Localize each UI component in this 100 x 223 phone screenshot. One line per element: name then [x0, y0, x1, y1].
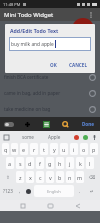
button[interactable]: Done	[80, 121, 96, 127]
staticText: d	[28, 160, 32, 167]
staticText: finish BCA certificate	[4, 74, 49, 80]
staticText: t	[43, 146, 45, 153]
button[interactable]: s	[16, 157, 24, 169]
button[interactable]: Period	[76, 185, 83, 197]
button[interactable]: Toggle	[4, 122, 14, 127]
staticText: n	[68, 174, 72, 181]
button[interactable]: q	[2, 143, 9, 155]
button[interactable]: z	[16, 171, 24, 183]
staticText: q	[4, 146, 8, 153]
button[interactable]: Enter	[85, 185, 98, 197]
button[interactable]: Home	[46, 201, 55, 210]
staticText: CANCEL	[69, 62, 87, 68]
staticText: ?123	[3, 188, 13, 194]
button[interactable]: Search	[61, 120, 70, 129]
staticText: o	[82, 146, 86, 153]
staticText: x	[29, 174, 32, 181]
button[interactable]: k	[76, 157, 84, 169]
staticText: came in bag, add in paper	[4, 90, 61, 96]
staticText: .	[79, 188, 81, 194]
button[interactable]: Symbols	[2, 185, 14, 197]
button[interactable]: Backspace	[86, 171, 98, 183]
staticText: l	[89, 160, 91, 167]
button[interactable]: m	[76, 171, 84, 183]
button[interactable]: Add todo	[72, 18, 94, 40]
staticText: v	[49, 174, 52, 181]
button[interactable]: w	[11, 143, 18, 155]
button[interactable]: a	[6, 157, 14, 169]
staticText: b	[58, 174, 62, 181]
staticText: e	[22, 146, 26, 153]
button[interactable]: Space	[34, 185, 74, 197]
staticText: s	[19, 160, 22, 167]
staticText: ↵	[90, 189, 94, 194]
button[interactable]: f	[36, 157, 44, 169]
button[interactable]: g	[46, 157, 54, 169]
button[interactable]: finish BCA certificate	[0, 69, 100, 85]
button[interactable]: Back	[73, 201, 82, 210]
button[interactable]: Translate	[82, 134, 88, 140]
staticText: Mini Todo Widget	[4, 11, 54, 19]
staticText: w	[12, 146, 17, 153]
staticText: Apple	[48, 134, 61, 140]
button[interactable]: take medicine on bag	[0, 101, 100, 117]
button[interactable]: b	[56, 171, 64, 183]
staticText: ⌫	[89, 175, 96, 180]
button[interactable]: Voice input	[91, 134, 97, 140]
button[interactable]: came in bag, add in paper	[0, 85, 100, 101]
button[interactable]: t	[40, 143, 48, 155]
staticText: g	[48, 160, 52, 167]
button[interactable]: Clipboard	[3, 134, 9, 140]
button[interactable]: o	[80, 143, 88, 155]
button[interactable]: d	[26, 157, 34, 169]
staticText: Add/Edit Todo Text	[10, 27, 59, 34]
button[interactable]: List	[42, 120, 51, 129]
staticText: buy milk and apple	[11, 41, 54, 48]
button[interactable]: Apple	[46, 134, 63, 140]
button[interactable]: some	[20, 134, 36, 140]
button[interactable]: Emoji	[73, 134, 79, 140]
staticText: p	[92, 146, 96, 153]
staticText: a	[8, 160, 12, 167]
button[interactable]: v	[46, 171, 54, 183]
button[interactable]: CANCEL	[65, 60, 91, 70]
button[interactable]: c	[36, 171, 44, 183]
staticText: OK	[50, 62, 57, 68]
button[interactable]: OK	[45, 60, 62, 70]
staticText: j	[69, 160, 71, 167]
button[interactable]: u	[60, 143, 68, 155]
staticText: ⇧	[6, 175, 10, 180]
button[interactable]: j	[66, 157, 74, 169]
staticText: h	[58, 160, 62, 167]
button[interactable]: e	[20, 143, 28, 155]
button[interactable]: l	[86, 157, 94, 169]
button[interactable]: i	[70, 143, 78, 155]
staticText: r	[33, 146, 36, 153]
button[interactable]: h	[56, 157, 64, 169]
button[interactable]: Add	[23, 120, 32, 129]
staticText: f	[39, 160, 41, 167]
staticText: c	[39, 174, 42, 181]
button[interactable]: Comma	[16, 185, 23, 197]
button[interactable]: p	[90, 143, 98, 155]
staticText: English	[47, 189, 61, 194]
staticText: some	[22, 134, 34, 140]
staticText: take medicine on bag	[4, 106, 51, 112]
button[interactable]: Recents	[18, 201, 27, 210]
button[interactable]: Language	[24, 185, 33, 197]
staticText: ,	[19, 188, 21, 194]
button[interactable]: n	[66, 171, 74, 183]
button[interactable]: Shift	[2, 171, 14, 183]
staticText: 11:48 PM	[3, 2, 21, 7]
button[interactable]: buy milk and apple	[9, 37, 91, 51]
button[interactable]: y	[50, 143, 58, 155]
staticText: i	[73, 146, 75, 153]
staticText: Done	[82, 121, 94, 127]
staticText: u	[62, 146, 66, 153]
button[interactable]: x	[26, 171, 34, 183]
staticText: y	[53, 146, 56, 153]
staticText: m	[77, 174, 83, 181]
button[interactable]: r	[30, 143, 38, 155]
staticText: z	[19, 174, 22, 181]
button[interactable]: More options	[86, 10, 96, 20]
